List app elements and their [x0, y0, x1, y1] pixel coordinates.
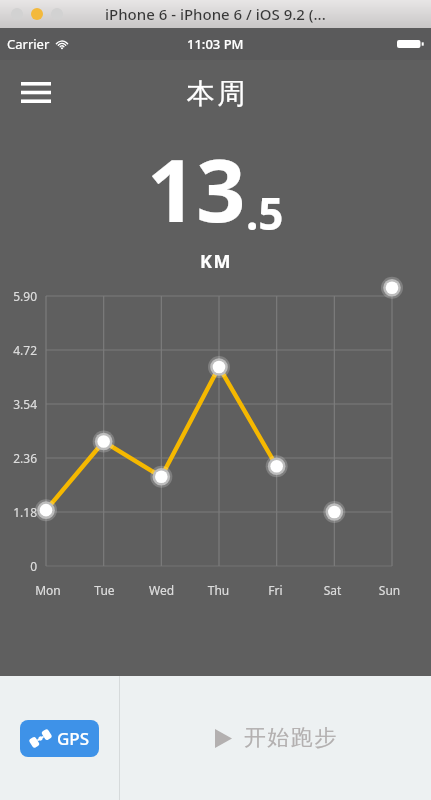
button[interactable]: Menu	[12, 68, 60, 116]
staticText: 11:03 PM	[187, 35, 244, 53]
staticText: .5	[246, 183, 284, 243]
staticText: 5.90	[0, 288, 37, 304]
staticText: KM	[200, 249, 232, 274]
staticText: Carrier	[7, 35, 50, 53]
staticText: Fri	[247, 582, 304, 598]
staticText: 0	[0, 558, 37, 574]
button[interactable]: GPS	[0, 676, 119, 800]
staticText: Sat	[304, 582, 361, 598]
staticText: 13	[147, 130, 246, 247]
staticText: Thu	[190, 582, 247, 598]
staticText: Mon	[20, 582, 76, 598]
staticText: 2.36	[0, 450, 37, 466]
staticText: 4.72	[0, 342, 37, 358]
staticText: iPhone 6 - iPhone 6 / iOS 9.2 (...	[105, 4, 326, 24]
staticText: GPS	[57, 727, 90, 750]
staticText: Wed	[133, 582, 190, 598]
staticText: 开始跑步	[243, 724, 337, 752]
staticText: Tue	[76, 582, 133, 598]
staticText: 1.18	[0, 504, 37, 520]
staticText: Sun	[361, 582, 418, 598]
button[interactable]: 开始跑步	[120, 676, 431, 800]
staticText: 本周	[185, 76, 247, 111]
staticText: 3.54	[0, 396, 37, 412]
